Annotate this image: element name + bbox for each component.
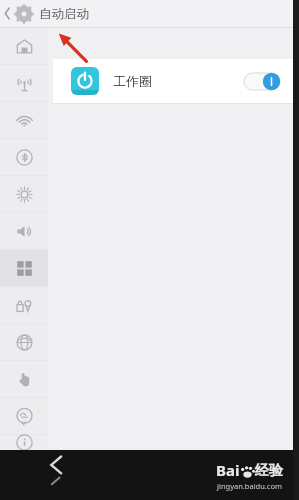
button[interactable]: Bluetooth bbox=[0, 139, 48, 175]
button[interactable]: Brightness bbox=[0, 176, 48, 212]
button[interactable]: Volume bbox=[0, 213, 48, 249]
staticText: 经验 bbox=[255, 462, 283, 480]
button[interactable]: WiFi bbox=[0, 102, 48, 138]
button[interactable]: Home bbox=[0, 28, 48, 64]
button[interactable]: Settings bbox=[14, 4, 33, 23]
button[interactable]: Back bbox=[0, 0, 14, 27]
button[interactable]: Apps bbox=[0, 250, 48, 286]
staticText: 工作圈 bbox=[113, 73, 152, 89]
button[interactable]: Signal bbox=[0, 65, 48, 101]
button[interactable]: Touch bbox=[0, 361, 48, 397]
button[interactable]: Back bbox=[44, 454, 70, 496]
staticText: jingyan.baidu.com bbox=[217, 481, 282, 491]
button[interactable]: Toggle 工作圈 bbox=[244, 73, 280, 90]
button[interactable]: Network bbox=[0, 324, 48, 360]
button[interactable]: Security bbox=[0, 287, 48, 323]
button[interactable]: Info bbox=[0, 435, 48, 450]
button[interactable]: Cloud bbox=[0, 398, 48, 434]
staticText: Bai bbox=[216, 460, 240, 480]
staticText: 自动启动 bbox=[39, 6, 89, 22]
button[interactable]: 工作圈 bbox=[53, 59, 294, 103]
